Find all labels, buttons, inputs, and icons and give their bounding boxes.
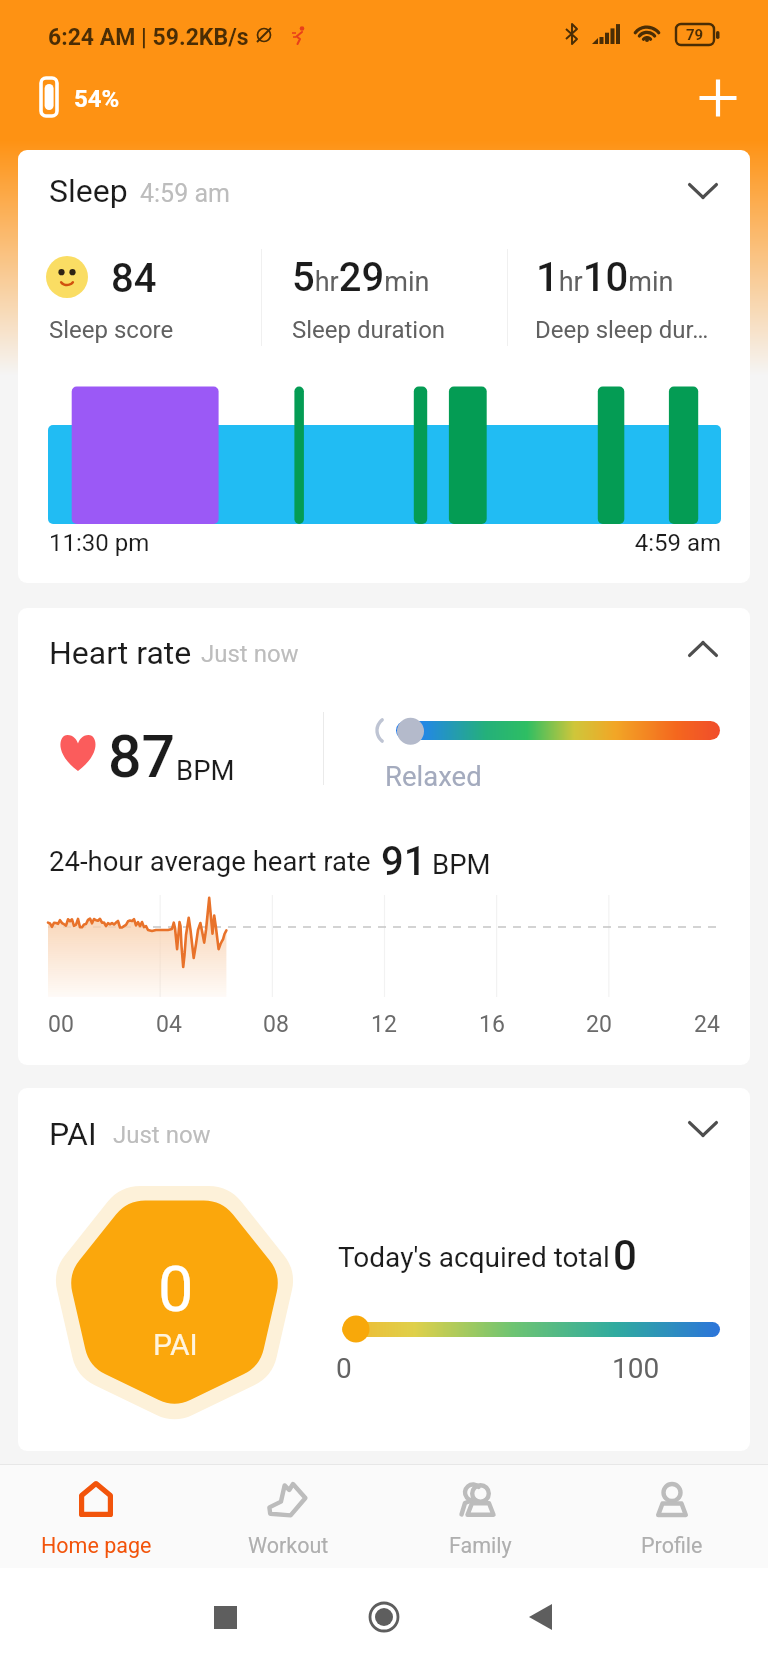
staticText: 100 bbox=[612, 1352, 660, 1385]
staticText: 4:59 am bbox=[140, 179, 230, 208]
staticText: 04 bbox=[156, 1011, 182, 1038]
staticText: 84 bbox=[111, 255, 157, 302]
button[interactable]: Collapse Sleep bbox=[675, 163, 731, 219]
button[interactable] bbox=[18, 608, 750, 1065]
button[interactable]: Collapse Heart rate bbox=[675, 621, 731, 677]
staticText: PAI bbox=[153, 1327, 198, 1362]
staticText: 20 bbox=[586, 1011, 612, 1038]
button[interactable] bbox=[18, 1088, 750, 1451]
staticText: BPM bbox=[432, 848, 491, 880]
staticText: 54% bbox=[74, 85, 120, 113]
staticText: 87 bbox=[108, 722, 176, 791]
staticText: 79 bbox=[686, 26, 704, 44]
staticText: 16 bbox=[479, 1011, 505, 1038]
button[interactable]: Home page bbox=[0, 1464, 192, 1568]
staticText: 11:30 pm bbox=[49, 529, 150, 557]
staticText: Sleep duration bbox=[292, 316, 446, 344]
staticText: 12 bbox=[371, 1011, 397, 1038]
staticText: 24-hour average heart rate bbox=[49, 845, 371, 877]
staticText: 4:59 am bbox=[620, 529, 721, 557]
staticText: 0 bbox=[158, 1253, 194, 1327]
staticText: Just now bbox=[201, 640, 299, 668]
staticText: 5hr29min bbox=[292, 254, 430, 301]
staticText: 1hr10min bbox=[536, 254, 674, 301]
button[interactable] bbox=[18, 150, 750, 583]
staticText: 0 bbox=[336, 1352, 352, 1385]
staticText: Just now bbox=[113, 1121, 211, 1149]
staticText: Workout bbox=[248, 1533, 329, 1558]
button[interactable]: Add bbox=[690, 70, 746, 126]
staticText: 0 bbox=[613, 1231, 637, 1280]
staticText: Sleep score bbox=[49, 316, 174, 344]
staticText: Profile bbox=[641, 1533, 703, 1558]
staticText: 91 bbox=[381, 838, 427, 885]
button[interactable]: Workout bbox=[192, 1464, 384, 1568]
staticText: Deep sleep dur… bbox=[535, 316, 711, 344]
staticText: 24 bbox=[694, 1011, 720, 1038]
staticText: 6:24 AM | 59.2KB/s bbox=[48, 24, 249, 51]
staticText: PAI bbox=[49, 1115, 97, 1153]
staticText: Today's acquired total bbox=[338, 1241, 610, 1274]
button[interactable]: Profile bbox=[576, 1464, 768, 1568]
staticText: Heart rate bbox=[49, 634, 192, 672]
staticText: Family bbox=[449, 1533, 512, 1558]
staticText: Home page bbox=[41, 1533, 152, 1558]
staticText: BPM bbox=[176, 754, 235, 786]
staticText: 00 bbox=[48, 1011, 74, 1038]
button[interactable]: Expand PAI bbox=[675, 1101, 731, 1157]
staticText: 08 bbox=[263, 1011, 289, 1038]
staticText: Sleep bbox=[49, 172, 128, 210]
staticText: Relaxed bbox=[385, 760, 482, 792]
button[interactable]: Family bbox=[384, 1464, 576, 1568]
